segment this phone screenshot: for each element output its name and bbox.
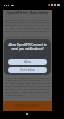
staticText: OpenVPN Inc. Data Safety [5,11,50,15]
staticText: Our desktop client software is directly … [5,35,50,47]
staticText: IMPORT PROFILE [15,104,40,108]
staticText: Allow [24,60,32,64]
button[interactable]: IMPORT PROFILE [3,101,52,111]
staticText: Import a profile from an OpenVPN Access … [5,76,50,97]
staticText: Don't allow [20,68,35,72]
button[interactable]: Don't allow [8,67,47,73]
staticText: OpenVPN Connect is the free and full-fea… [5,18,50,33]
button[interactable]: Allow [8,59,47,65]
staticText: Allow OpenVPN Connect to send you notifi… [8,43,47,51]
